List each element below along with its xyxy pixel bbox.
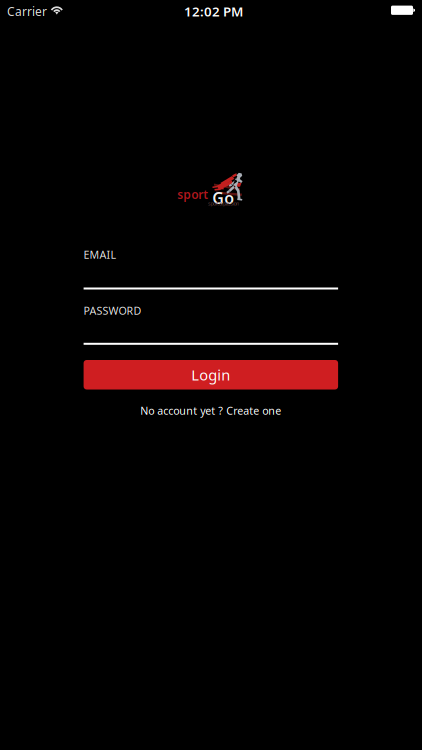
staticText: 12:02 PM	[184, 2, 243, 20]
staticText: Login	[191, 365, 230, 384]
button[interactable]: No account yet ? Create one	[84, 403, 338, 417]
staticText: PASSWORD	[84, 303, 142, 318]
staticText: sport & passion	[208, 200, 239, 207]
staticText: EMAIL	[84, 247, 117, 262]
staticText: Carrier	[7, 3, 47, 19]
button[interactable]: Login	[84, 360, 338, 389]
staticText: sport	[177, 186, 208, 202]
staticText: No account yet ? Create one	[140, 403, 281, 418]
staticText: Go	[212, 187, 234, 208]
